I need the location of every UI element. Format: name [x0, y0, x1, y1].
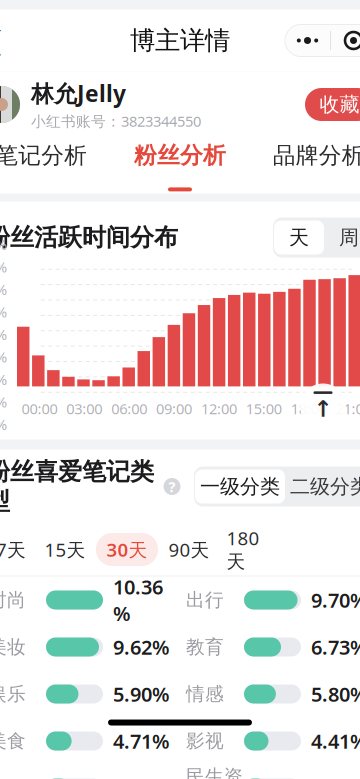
staticText: 民生资讯 — [186, 765, 243, 779]
staticText: ? — [168, 477, 175, 496]
staticText: 3% — [0, 347, 7, 366]
staticText: 博主详情 — [130, 25, 230, 56]
button[interactable]: 7天 — [0, 533, 34, 566]
staticText: 7天 — [0, 537, 26, 562]
staticText: 二级分类 — [290, 474, 360, 499]
button[interactable]: 收藏 — [305, 88, 360, 121]
staticText: 粉丝喜爱笔记类型 — [0, 457, 154, 516]
staticText: 0% — [0, 414, 7, 434]
staticText: 林允Jelly — [31, 78, 126, 108]
button[interactable]: 180天 — [220, 533, 266, 566]
staticText: 笔记分析 — [0, 142, 87, 169]
staticText: 粉丝分析 — [134, 142, 226, 169]
staticText: 4.41% — [311, 728, 360, 754]
button[interactable]: 关闭 — [331, 24, 360, 56]
staticText: 粉丝活跃时间分布 — [0, 223, 178, 252]
staticText: 小红书账号：3823344550 — [31, 111, 201, 131]
staticText: 180天 — [226, 526, 259, 573]
staticText: 1% — [0, 392, 7, 411]
staticText: 5.80% — [311, 681, 360, 707]
staticText: 品牌分析 — [273, 142, 360, 169]
button[interactable]: 回到顶部 — [300, 383, 346, 429]
staticText: 8% — [0, 234, 7, 254]
staticText: 娱乐 — [0, 682, 26, 705]
staticText: 15:00 — [246, 399, 282, 418]
staticText: 时尚 — [0, 588, 26, 611]
staticText: 90天 — [168, 537, 209, 562]
staticText: ❮ — [0, 26, 4, 55]
staticText: 6% — [0, 279, 7, 299]
button[interactable]: 更多 — [285, 24, 330, 56]
staticText: ↑ — [313, 396, 332, 422]
button[interactable]: 二级分类 — [285, 469, 360, 503]
staticText: 00:00 — [21, 399, 57, 418]
staticText: 12:00 — [201, 399, 237, 418]
staticText: 周 — [339, 225, 359, 250]
button[interactable]: 品牌分析 — [249, 137, 360, 193]
button[interactable]: 30天 — [96, 533, 158, 566]
staticText: 7% — [0, 257, 7, 276]
staticText: 9.62% — [113, 634, 170, 660]
staticText: 4% — [0, 324, 7, 344]
staticText: 4.71% — [113, 728, 170, 754]
button[interactable]: 一级分类 — [195, 469, 285, 503]
staticText: 美食 — [0, 729, 26, 752]
staticText: 6.73% — [311, 634, 360, 660]
staticText: 2% — [0, 369, 7, 389]
button[interactable]: 15天 — [42, 533, 88, 566]
button[interactable]: 粉丝分析 — [111, 137, 249, 193]
button[interactable]: 返回 — [0, 18, 16, 62]
staticText: 出行 — [186, 588, 224, 611]
button[interactable]: 笔记分析 — [0, 137, 111, 193]
button[interactable]: 天 — [274, 220, 324, 254]
staticText: 一级分类 — [200, 474, 280, 499]
button[interactable]: 90天 — [166, 533, 212, 566]
staticText: 15天 — [44, 537, 85, 562]
staticText: 5.90% — [113, 681, 170, 707]
staticText: 天 — [289, 225, 309, 250]
staticText: 21:00 — [336, 399, 360, 418]
staticText: 10.36% — [113, 573, 163, 626]
staticText: 教育 — [186, 635, 224, 658]
staticText: 9.70% — [311, 587, 360, 613]
staticText: 情感 — [186, 682, 224, 705]
staticText: 03:00 — [66, 399, 102, 418]
button[interactable]: 说明 — [162, 476, 182, 496]
staticText: 美妆 — [0, 635, 26, 658]
staticText: 收藏 — [319, 92, 359, 117]
staticText: 5% — [0, 302, 7, 321]
staticText: 18:00 — [291, 399, 327, 418]
staticText: 09:00 — [156, 399, 192, 418]
staticText: 30天 — [106, 537, 147, 562]
button[interactable]: 周 — [324, 220, 360, 254]
staticText: 影视 — [186, 729, 224, 752]
staticText: 06:00 — [111, 399, 147, 418]
